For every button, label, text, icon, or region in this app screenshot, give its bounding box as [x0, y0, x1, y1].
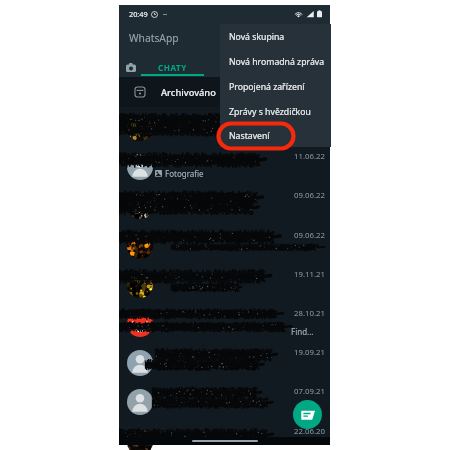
- staticText: 28.10.21: [294, 308, 325, 319]
- staticText: Nová skupina: [229, 31, 285, 43]
- staticText: 19.11.21: [294, 269, 325, 280]
- staticText: 22.06.20: [294, 426, 325, 437]
- button[interactable]: Nová hromadná zpráva: [220, 49, 331, 74]
- staticText: 11.06.22: [294, 151, 325, 162]
- staticText: 09.06.22: [294, 190, 325, 201]
- staticText: Archivováno: [161, 86, 216, 99]
- staticText: Find...: [291, 326, 314, 337]
- staticText: Nová hromadná zpráva: [229, 56, 325, 68]
- staticText: Nastavení: [229, 130, 270, 142]
- button[interactable]: 11.06.22: [119, 149, 330, 188]
- button[interactable]: CHATY: [141, 57, 204, 77]
- button[interactable]: Archivováno: [119, 77, 330, 107]
- staticText: WhatsApp: [129, 31, 179, 45]
- staticText: 09.06.22: [294, 230, 325, 241]
- staticText: Propojená zařízení: [229, 81, 305, 93]
- button[interactable]: 28.10.21: [119, 306, 330, 345]
- staticText: Zprávy s hvězdičkou: [229, 106, 311, 118]
- staticText: 19.09.21: [294, 347, 325, 358]
- button[interactable]: [119, 110, 330, 149]
- staticText: CHATY: [158, 62, 187, 73]
- button[interactable]: 09.06.22: [119, 228, 330, 267]
- button[interactable]: 19.09.21: [119, 345, 330, 384]
- button[interactable]: 09.06.22: [119, 188, 330, 227]
- staticText: 20:49: [129, 9, 148, 19]
- button[interactable]: 19.11.21: [119, 267, 330, 306]
- button[interactable]: Nastavení: [220, 124, 331, 147]
- button[interactable]: Nová skupina: [220, 24, 331, 49]
- staticText: 07.09.21: [294, 386, 325, 397]
- button[interactable]: Zprávy s hvězdičkou: [220, 99, 331, 124]
- button[interactable]: New chat: [293, 400, 322, 429]
- button[interactable]: 07.09.21: [119, 384, 330, 423]
- staticText: Fotografie: [165, 168, 204, 179]
- button[interactable]: Propojená zařízení: [220, 74, 331, 99]
- button[interactable]: 22.06.20: [119, 424, 330, 450]
- button[interactable]: Camera: [121, 57, 141, 77]
